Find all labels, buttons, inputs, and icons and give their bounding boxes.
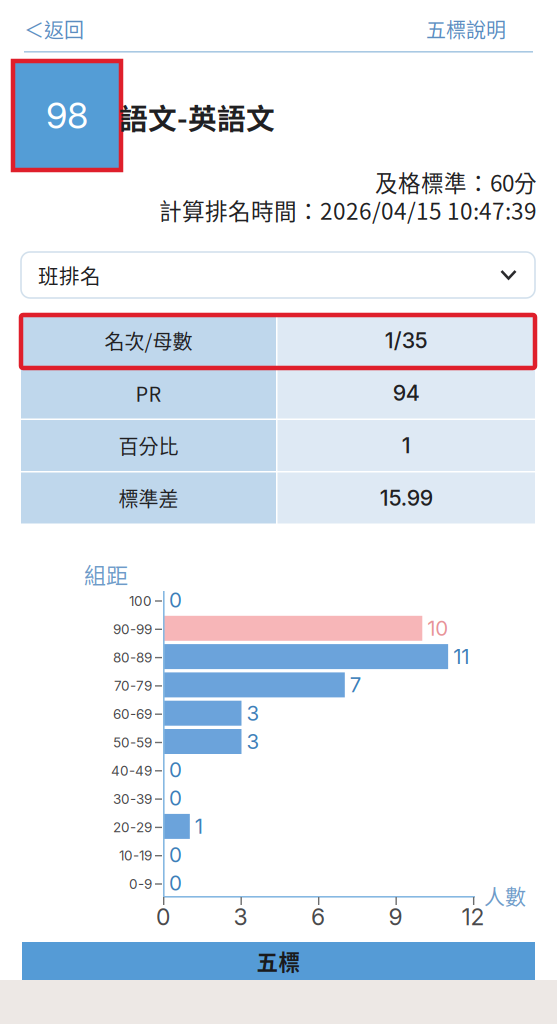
staticText: 11 [453, 644, 469, 669]
staticText: ＜返回 [24, 14, 84, 43]
staticText: 30-39 [113, 791, 152, 807]
staticText: 0 [169, 588, 182, 612]
button[interactable]: 五標 [22, 942, 535, 980]
staticText: 94 [393, 380, 420, 406]
staticText: 0 [156, 903, 170, 931]
staticText: PR [135, 378, 161, 407]
staticText: 100 [129, 593, 152, 609]
staticText: 人數 [484, 880, 526, 910]
staticText: 7 [350, 672, 362, 697]
staticText: 90-99 [113, 621, 152, 637]
button[interactable]: 五標說明 [396, 6, 506, 52]
staticText: 計算排名時間：2026/04/15 10:47:39 [159, 194, 537, 226]
staticText: 五標 [256, 945, 300, 976]
staticText: 0 [169, 871, 182, 895]
staticText: 10 [427, 616, 448, 641]
staticText: 1/35 [385, 327, 428, 353]
staticText: 20-29 [113, 819, 152, 835]
staticText: 0 [169, 757, 182, 782]
staticText: 名次/母數 [104, 326, 192, 355]
staticText: 40-49 [111, 763, 152, 779]
staticText: 標準差 [118, 483, 178, 512]
staticText: 組距 [84, 558, 128, 590]
button[interactable]: ＜返回 [24, 6, 134, 52]
staticText: 15.99 [380, 485, 433, 511]
staticText: 6 [311, 903, 325, 931]
staticText: 98 [46, 94, 88, 137]
staticText: 1 [195, 814, 203, 839]
staticText: 0-9 [129, 876, 152, 892]
button[interactable]: 班排名 [21, 252, 535, 298]
staticText: 70-79 [114, 678, 152, 694]
staticText: 3 [233, 903, 247, 931]
staticText: 80-89 [113, 649, 152, 666]
staticText: 10-19 [119, 847, 152, 864]
staticText: 五標說明 [426, 14, 506, 43]
staticText: 語文-英語文 [119, 96, 275, 138]
staticText: 0 [169, 786, 182, 810]
staticText: 9 [388, 903, 402, 931]
staticText: 及格標準：60分 [375, 166, 537, 198]
staticText: 百分比 [118, 431, 178, 460]
staticText: 50-59 [113, 734, 152, 751]
staticText: 12 [461, 903, 484, 931]
staticText: 3 [246, 701, 259, 726]
staticText: 0 [169, 842, 182, 867]
staticText: 60-69 [113, 706, 152, 722]
staticText: 班排名 [38, 260, 101, 290]
staticText: 3 [246, 729, 259, 754]
staticText: 1 [402, 432, 411, 458]
